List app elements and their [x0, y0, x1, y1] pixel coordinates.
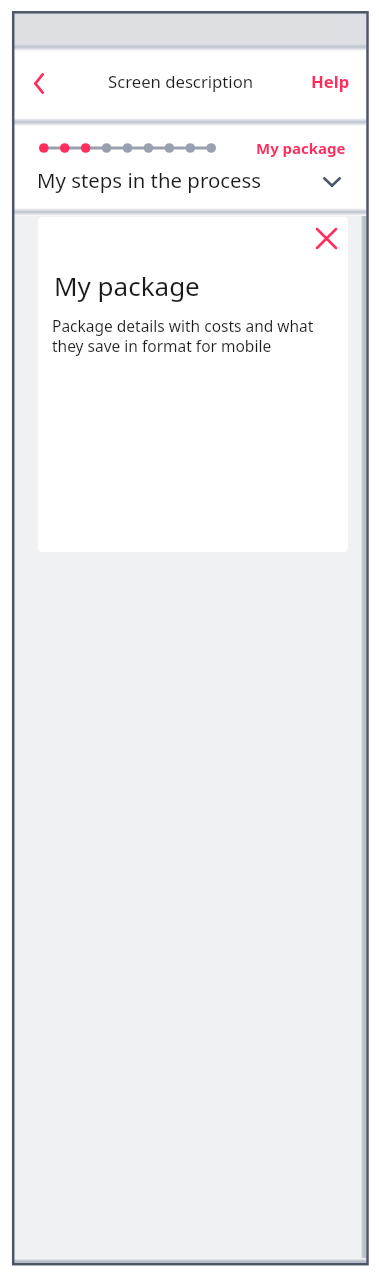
staticText: Help: [311, 70, 350, 93]
staticText: My steps in the process: [37, 166, 262, 194]
button[interactable]: Close: [307, 219, 345, 257]
staticText: Screen description: [108, 70, 254, 93]
staticText: My package: [54, 268, 200, 303]
button[interactable]: Back: [17, 61, 61, 105]
button[interactable]: Help: [295, 61, 366, 108]
staticText: Package details with costs and what they…: [52, 315, 338, 356]
staticText: My package: [256, 138, 346, 158]
button[interactable]: My steps in the process: [12, 166, 366, 194]
